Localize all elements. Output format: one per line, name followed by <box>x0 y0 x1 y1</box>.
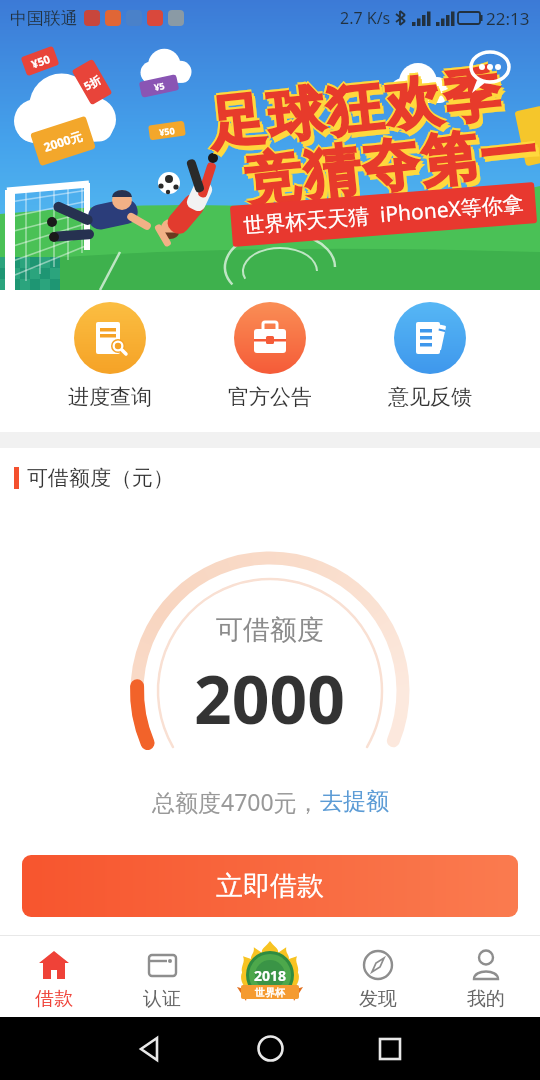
staticText: 竞猜夺第一 <box>242 118 540 219</box>
staticText: 竞猜夺第一 <box>244 120 540 222</box>
staticText: 足球狂欢季 <box>202 59 503 160</box>
staticText: 2000元 <box>41 127 84 155</box>
button[interactable]: 我的 <box>432 936 540 1017</box>
staticText: 足球狂欢季 <box>208 63 508 165</box>
button[interactable]: 发现 <box>324 936 432 1017</box>
staticText: 2018 <box>254 966 287 985</box>
staticText: 2000 <box>194 653 346 743</box>
staticText: 意见反馈 <box>388 384 472 410</box>
staticText: 官方公告 <box>228 384 312 410</box>
staticText: 5折 <box>81 71 104 93</box>
button[interactable]: 官方公告 <box>200 290 340 432</box>
staticText: ¥5 <box>153 79 166 93</box>
button[interactable]: 去提额 <box>320 787 389 816</box>
button[interactable] <box>110 1017 190 1080</box>
staticText: 认证 <box>143 987 181 1011</box>
button[interactable]: 认证 <box>108 936 216 1017</box>
staticText: 足球狂欢季 <box>206 61 507 162</box>
staticText: ¥50 <box>29 51 52 72</box>
staticText: 22:13 <box>486 7 530 30</box>
staticText: 2.7 K/s <box>340 7 391 29</box>
staticText: 竞猜夺第一 <box>238 116 539 217</box>
staticText: 中国联通 <box>10 8 78 29</box>
button[interactable]: 借款 <box>0 936 108 1017</box>
staticText: 我的 <box>467 987 505 1011</box>
button[interactable]: 意见反馈 <box>360 290 500 432</box>
button[interactable]: 进度查询 <box>40 290 180 432</box>
staticText: 总额度4700元， <box>152 786 320 817</box>
staticText: 世界杯 <box>255 986 285 999</box>
staticText: 去提额 <box>320 787 389 816</box>
button[interactable] <box>350 1017 430 1080</box>
staticText: 进度查询 <box>68 384 152 410</box>
button[interactable] <box>230 1017 310 1080</box>
staticText: 可借额度（元） <box>27 465 174 491</box>
staticText: 发现 <box>359 987 397 1011</box>
staticText: 足球狂欢季 <box>204 57 505 158</box>
button[interactable]: 世界杯天天猜 iPhoneX等你拿 <box>242 189 525 240</box>
staticText: 立即借款 <box>216 869 324 903</box>
staticText: 借款 <box>35 987 73 1011</box>
staticText: 世界杯天天猜 iPhoneX等你拿 <box>242 189 525 240</box>
staticText: 可借额度 <box>216 613 324 647</box>
staticText: 竞猜夺第一 <box>240 114 540 215</box>
staticText: 足球狂欢季 <box>204 59 505 160</box>
button[interactable]: 立即借款 <box>22 855 518 917</box>
staticText: ¥50 <box>158 124 176 138</box>
staticText: 竞猜夺第一 <box>240 116 540 217</box>
button[interactable]: 2018 <box>216 936 324 1017</box>
